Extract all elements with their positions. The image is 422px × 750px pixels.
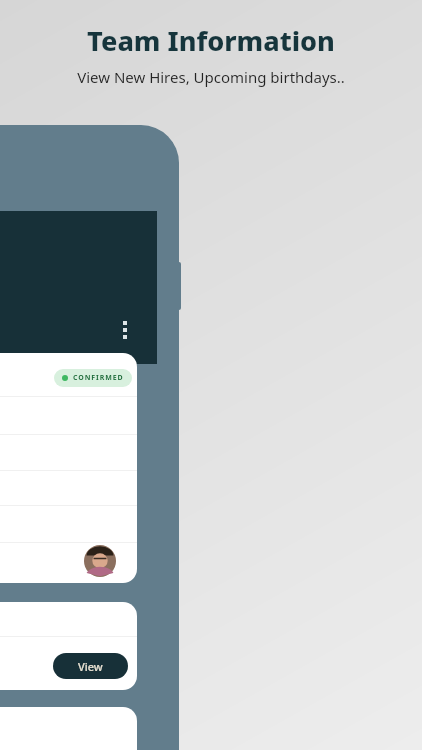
button[interactable] [0,707,137,750]
staticText: View [78,659,103,674]
staticText: CONFIRMED [73,373,124,383]
button[interactable]: View [53,653,128,679]
button[interactable]: View [0,602,137,690]
button[interactable]: CONFIRMED [62,369,124,387]
button[interactable]: More options [116,319,134,349]
staticText: Team Information [87,22,335,59]
button[interactable]: Profile photo [82,543,118,579]
button[interactable]: CONFIRMED [0,353,137,583]
staticText: View New Hires, Upcoming birthdays.. [77,67,345,87]
